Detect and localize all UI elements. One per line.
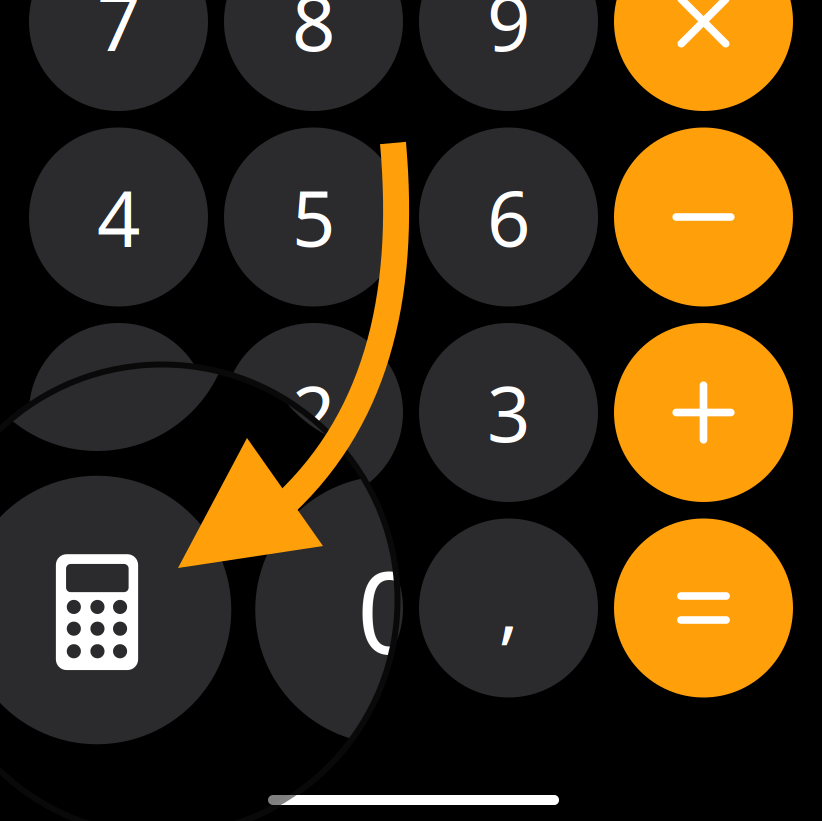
button[interactable]: 0 xyxy=(255,476,524,744)
staticText: 3 xyxy=(487,362,530,463)
button[interactable]: , xyxy=(548,476,816,744)
staticText: 3 xyxy=(649,241,714,392)
button[interactable]: 3 xyxy=(548,182,816,451)
button[interactable]: 0 xyxy=(224,518,403,697)
button[interactable]: 9 xyxy=(419,0,598,111)
staticText: 5 xyxy=(357,0,422,99)
staticText: 7 xyxy=(97,0,140,72)
button[interactable]: 6 xyxy=(548,0,816,158)
staticText: 6 xyxy=(649,0,714,99)
button[interactable]: Subtract xyxy=(614,127,793,306)
button[interactable]: 5 xyxy=(255,0,524,158)
button[interactable]: 8 xyxy=(224,0,403,111)
button[interactable]: Calculator xyxy=(29,518,208,697)
staticText: 6 xyxy=(487,166,530,267)
button[interactable]: 7 xyxy=(29,0,208,111)
button[interactable]: Multiply xyxy=(614,0,793,111)
button[interactable]: Equals xyxy=(614,518,793,697)
button[interactable]: 2 xyxy=(255,182,524,451)
staticText: , xyxy=(498,555,518,656)
staticText: 4 xyxy=(97,166,140,267)
staticText: 5 xyxy=(292,166,335,267)
button[interactable]: 1 xyxy=(29,323,208,502)
button[interactable]: 1 xyxy=(0,182,231,451)
staticText: 9 xyxy=(487,0,530,72)
button[interactable]: Calculator xyxy=(0,476,231,744)
button[interactable]: 2 xyxy=(224,323,403,502)
button[interactable]: 6 xyxy=(419,127,598,306)
staticText: 8 xyxy=(292,0,335,72)
staticText: 1 xyxy=(64,241,129,392)
staticText: 4 xyxy=(64,0,129,99)
staticText: 2 xyxy=(292,362,335,463)
staticText: 1 xyxy=(97,362,140,463)
button[interactable]: 4 xyxy=(29,127,208,306)
staticText: , xyxy=(667,531,697,682)
button[interactable]: 5 xyxy=(224,127,403,306)
button[interactable]: 3 xyxy=(419,323,598,502)
button[interactable]: , xyxy=(419,518,598,697)
button[interactable]: Add xyxy=(614,323,793,502)
button[interactable]: 4 xyxy=(0,0,231,158)
staticText: 0 xyxy=(357,535,422,685)
staticText: 2 xyxy=(357,241,422,392)
